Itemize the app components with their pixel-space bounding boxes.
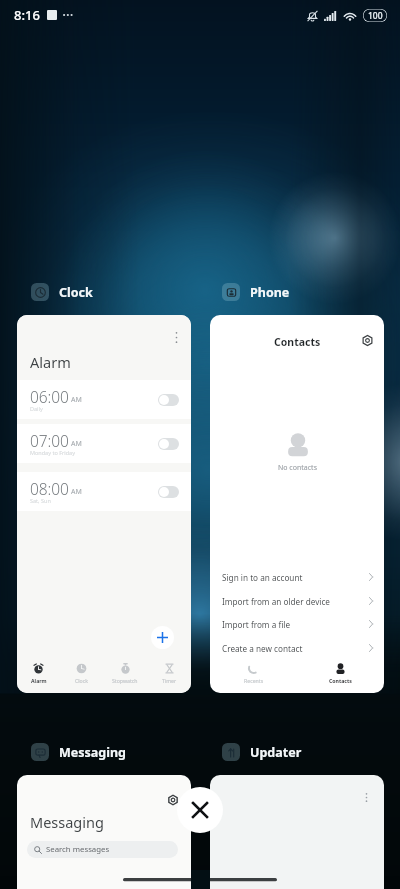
button[interactable]: 08:00 xyxy=(17,472,191,511)
staticText: Search messages xyxy=(46,844,110,855)
staticText: AM xyxy=(71,395,82,405)
staticText: Daily xyxy=(30,405,43,412)
button[interactable]: Clock xyxy=(60,654,103,692)
button[interactable]: Messaging xyxy=(31,743,126,761)
button[interactable]: More options xyxy=(168,329,184,345)
staticText: AM xyxy=(71,487,82,497)
staticText: AM xyxy=(71,439,82,449)
button[interactable]: Contacts xyxy=(210,315,384,693)
button[interactable]: Phone xyxy=(222,283,290,301)
button[interactable] xyxy=(158,438,179,450)
button[interactable]: Recents xyxy=(210,655,297,692)
button[interactable]: Contacts xyxy=(297,655,384,692)
button[interactable] xyxy=(158,486,179,498)
button[interactable]: Close all xyxy=(177,787,223,833)
staticText: Import from a file xyxy=(222,619,291,630)
button[interactable]: Clock xyxy=(31,283,93,301)
staticText: 08:00 xyxy=(30,478,69,499)
staticText: Sat, Sun xyxy=(30,497,51,504)
button[interactable]: Create a new contact xyxy=(210,638,384,658)
button[interactable]: Sign in to an account xyxy=(210,567,384,587)
staticText: 06:00 xyxy=(30,386,69,407)
staticText: Stopwatch xyxy=(112,677,138,684)
button[interactable]: More options xyxy=(210,775,384,889)
button[interactable]: Timer xyxy=(147,654,191,692)
button[interactable]: 06:00 xyxy=(17,380,191,419)
staticText: Create a new contact xyxy=(222,643,303,654)
button[interactable]: Stopwatch xyxy=(103,654,147,692)
staticText: Contacts xyxy=(329,677,352,684)
staticText: Contacts xyxy=(274,335,321,349)
staticText: Updater xyxy=(250,744,302,761)
button[interactable]: More options xyxy=(358,789,374,805)
staticText: Import from an older device xyxy=(222,596,330,607)
button[interactable] xyxy=(158,394,179,406)
staticText: Timer xyxy=(162,677,177,684)
button[interactable]: Import from an older device xyxy=(210,591,384,611)
staticText: Messaging xyxy=(30,812,104,832)
staticText: Monday to Friday xyxy=(30,449,75,456)
staticText: No contacts xyxy=(278,463,317,473)
staticText: Alarm xyxy=(30,352,71,372)
button[interactable]: Import from a file xyxy=(210,614,384,634)
staticText: Recents xyxy=(244,677,264,684)
button[interactable]: Settings xyxy=(164,791,182,809)
staticText: Clock xyxy=(59,284,93,301)
button[interactable]: 07:00 xyxy=(17,424,191,463)
staticText: 8:16 xyxy=(14,6,40,24)
staticText: Phone xyxy=(250,284,290,301)
button[interactable]: Settings xyxy=(358,331,376,349)
staticText: Clock xyxy=(75,677,89,684)
button[interactable]: Updater xyxy=(222,743,302,761)
staticText: Messaging xyxy=(59,744,126,761)
staticText: Alarm xyxy=(31,677,47,684)
button[interactable]: Add alarm xyxy=(151,626,174,649)
button[interactable]: Search messages xyxy=(27,841,178,858)
staticText: 07:00 xyxy=(30,430,69,451)
staticText: Sign in to an account xyxy=(222,572,303,583)
button[interactable]: More options xyxy=(17,315,191,693)
staticText: 100 xyxy=(368,10,383,22)
button[interactable]: Alarm xyxy=(17,654,60,692)
button[interactable]: Settings xyxy=(17,775,191,889)
